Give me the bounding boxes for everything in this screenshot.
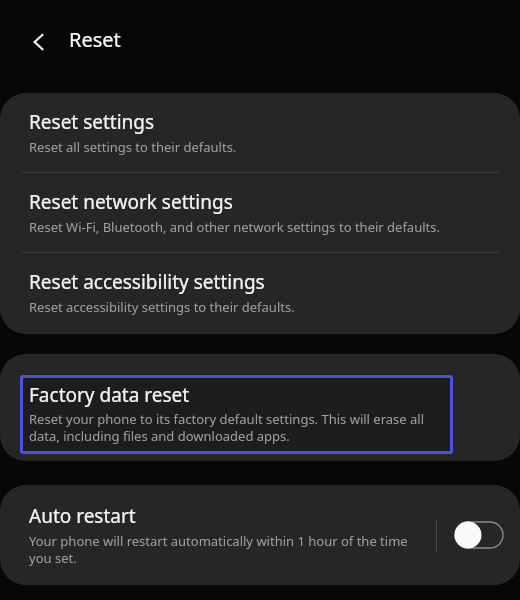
staticText: Your phone will restart automatically wi…: [29, 532, 426, 567]
button[interactable]: Auto restart: [0, 485, 520, 585]
staticText: Reset settings: [29, 109, 155, 135]
staticText: Reset your phone to its factory default …: [29, 410, 443, 445]
button[interactable]: Auto restart toggle: [454, 515, 506, 555]
button[interactable]: Back: [18, 21, 60, 63]
staticText: Reset: [69, 26, 121, 53]
button[interactable]: Reset accessibility settings: [0, 253, 520, 334]
staticText: Factory data reset: [29, 382, 190, 408]
staticText: Reset Wi-Fi, Bluetooth, and other networ…: [29, 218, 440, 236]
staticText: Reset accessibility settings to their de…: [29, 298, 295, 316]
button[interactable]: Reset settings: [0, 93, 520, 172]
staticText: Reset all settings to their defaults.: [29, 138, 237, 156]
staticText: Auto restart: [29, 503, 136, 529]
button[interactable]: Factory data reset: [20, 375, 453, 454]
staticText: Reset network settings: [29, 189, 233, 215]
button[interactable]: Reset network settings: [0, 173, 520, 252]
staticText: Reset accessibility settings: [29, 269, 265, 295]
